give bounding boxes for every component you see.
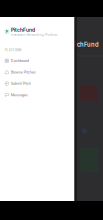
staticText: PitchFund bbox=[69, 41, 99, 48]
staticText: Dashboard bbox=[11, 58, 29, 63]
staticText: Messages bbox=[11, 93, 28, 97]
staticText: P bbox=[6, 29, 8, 34]
staticText: PitchFund bbox=[11, 27, 35, 33]
button[interactable]: Messages bbox=[0, 89, 74, 101]
button[interactable]: Dashboard bbox=[0, 55, 74, 66]
button[interactable]: Submit Pitch bbox=[0, 78, 74, 89]
staticText: Investment Networking Platform bbox=[11, 33, 57, 37]
staticText: PLATFORM bbox=[5, 49, 22, 52]
staticText: Browse Pitches bbox=[11, 70, 36, 74]
staticText: Submit Pitch bbox=[11, 81, 31, 86]
button[interactable]: Browse Pitches bbox=[0, 66, 74, 78]
